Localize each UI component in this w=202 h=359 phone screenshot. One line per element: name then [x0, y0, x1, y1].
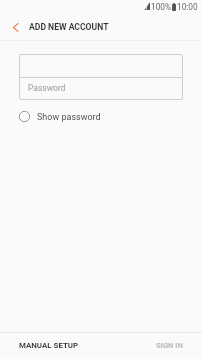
- staticText: Password: [28, 83, 66, 93]
- button[interactable]: Password: [28, 78, 174, 100]
- staticText: ADD NEW ACCOUNT: [29, 22, 109, 32]
- staticText: MANUAL SETUP: [19, 341, 79, 350]
- button[interactable]: Show password: [14, 105, 109, 127]
- staticText: SIGN IN: [156, 341, 183, 350]
- staticText: 10:00: [177, 2, 198, 12]
- staticText: Show password: [37, 112, 101, 123]
- button[interactable]: [28, 54, 174, 77]
- button[interactable]: Navigate up: [0, 14, 26, 40]
- button[interactable]: SIGN IN: [147, 332, 192, 358]
- staticText: 100%: [151, 2, 172, 12]
- button[interactable]: MANUAL SETUP: [10, 332, 88, 358]
